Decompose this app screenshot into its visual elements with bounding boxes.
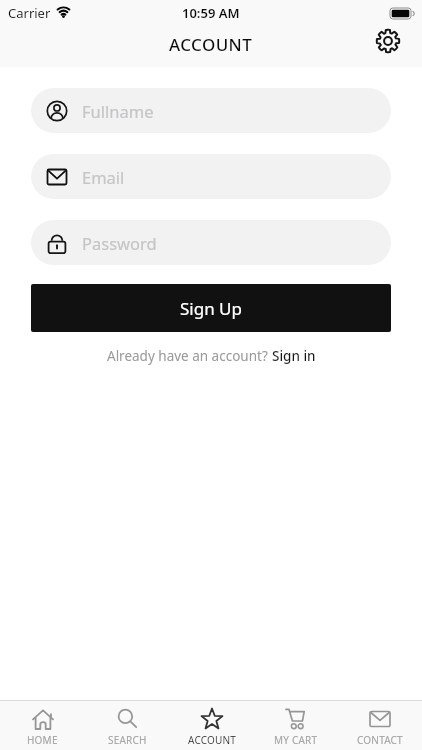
button[interactable]: CONTACT — [338, 701, 422, 750]
button[interactable]: ACCOUNT — [170, 701, 254, 750]
button[interactable]: Fullname — [31, 88, 391, 133]
staticText: ACCOUNT — [188, 733, 237, 747]
button[interactable] — [375, 28, 401, 54]
button[interactable]: Email — [31, 154, 391, 199]
staticText: 10:59 AM — [182, 4, 240, 22]
staticText: Sign in — [272, 347, 316, 365]
button[interactable]: HOME — [0, 701, 85, 750]
staticText: Already have an account? — [107, 347, 272, 365]
staticText: ACCOUNT — [169, 33, 253, 56]
staticText: SEARCH — [108, 733, 147, 747]
button[interactable]: Password — [31, 220, 391, 265]
staticText: Email — [82, 166, 125, 188]
button[interactable]: MY CART — [254, 701, 338, 750]
staticText: Carrier — [8, 4, 51, 22]
staticText: Sign Up — [180, 297, 242, 320]
staticText: CONTACT — [357, 733, 403, 747]
staticText: Fullname — [82, 100, 154, 122]
staticText: HOME — [27, 733, 58, 747]
staticText: MY CART — [274, 733, 318, 747]
button[interactable]: SEARCH — [85, 701, 170, 750]
button[interactable]: Sign in — [272, 347, 316, 365]
button[interactable]: Sign Up — [31, 284, 391, 332]
staticText: Password — [82, 232, 157, 254]
